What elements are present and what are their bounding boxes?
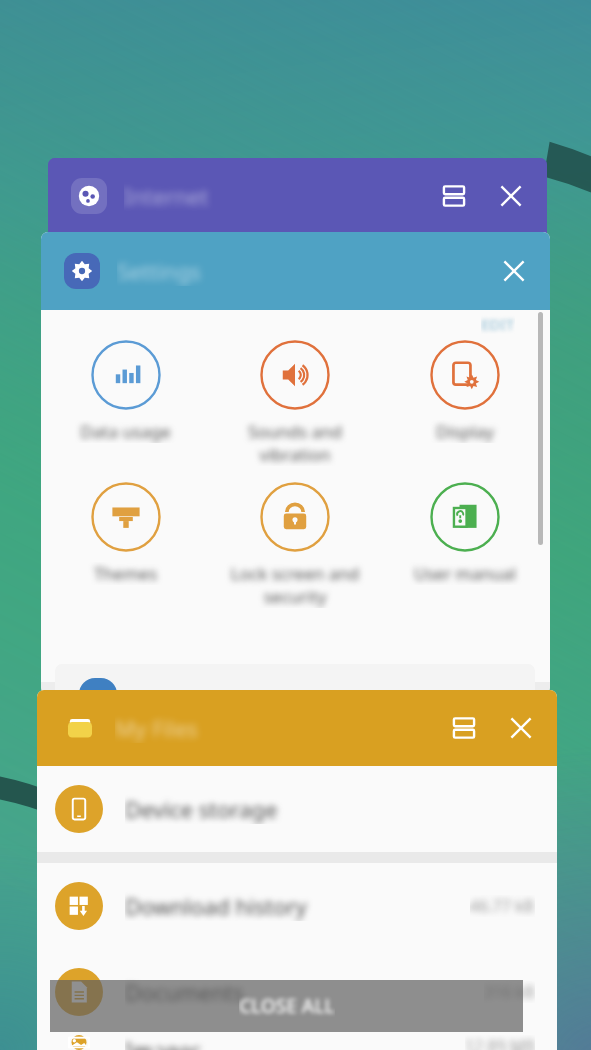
staticText: EDIT: [481, 314, 515, 334]
button[interactable]: Close: [491, 698, 551, 758]
staticText: 46.77 kB: [470, 895, 535, 917]
button[interactable]: Lock screen and security: [210, 482, 380, 608]
staticText: Themes: [41, 562, 210, 585]
button[interactable]: Internet: [48, 158, 547, 234]
button[interactable]: Download history: [37, 863, 557, 949]
button[interactable]: Split screen: [437, 701, 491, 755]
button[interactable]: Split screen: [427, 169, 481, 223]
staticText: Device storage: [125, 794, 278, 824]
staticText: 12.89 MB: [465, 1035, 535, 1050]
staticText: Images: [125, 1035, 202, 1050]
button[interactable]: Sounds and vibration: [210, 340, 380, 466]
button[interactable]: Themes: [41, 482, 210, 585]
staticText: Data usage: [41, 420, 210, 443]
staticText: 316 kB: [484, 981, 535, 1003]
button[interactable]: My Files: [37, 690, 557, 766]
button[interactable]: [55, 664, 535, 696]
button[interactable]: User manual: [380, 482, 550, 585]
button[interactable]: Display: [380, 340, 550, 443]
staticText: User manual: [380, 562, 550, 585]
button[interactable]: Close: [481, 166, 541, 226]
staticText: Internet: [124, 181, 209, 211]
staticText: Settings: [117, 256, 201, 286]
staticText: Download history: [125, 891, 307, 921]
staticText: Documents: [125, 977, 244, 1007]
staticText: Lock screen and security: [210, 562, 380, 608]
button[interactable]: Images: [37, 1035, 557, 1050]
staticText: My Files: [115, 713, 198, 743]
button[interactable]: Documents: [37, 949, 557, 1035]
button[interactable]: Settings: [41, 232, 550, 310]
staticText: CLOSE ALL: [239, 993, 335, 1019]
button[interactable]: Device storage: [37, 766, 557, 852]
staticText: Display: [380, 420, 550, 443]
staticText: Sounds and vibration: [210, 420, 380, 466]
button[interactable]: CLOSE ALL: [50, 980, 523, 1032]
button[interactable]: Data usage: [41, 340, 210, 443]
button[interactable]: Close: [484, 241, 544, 301]
